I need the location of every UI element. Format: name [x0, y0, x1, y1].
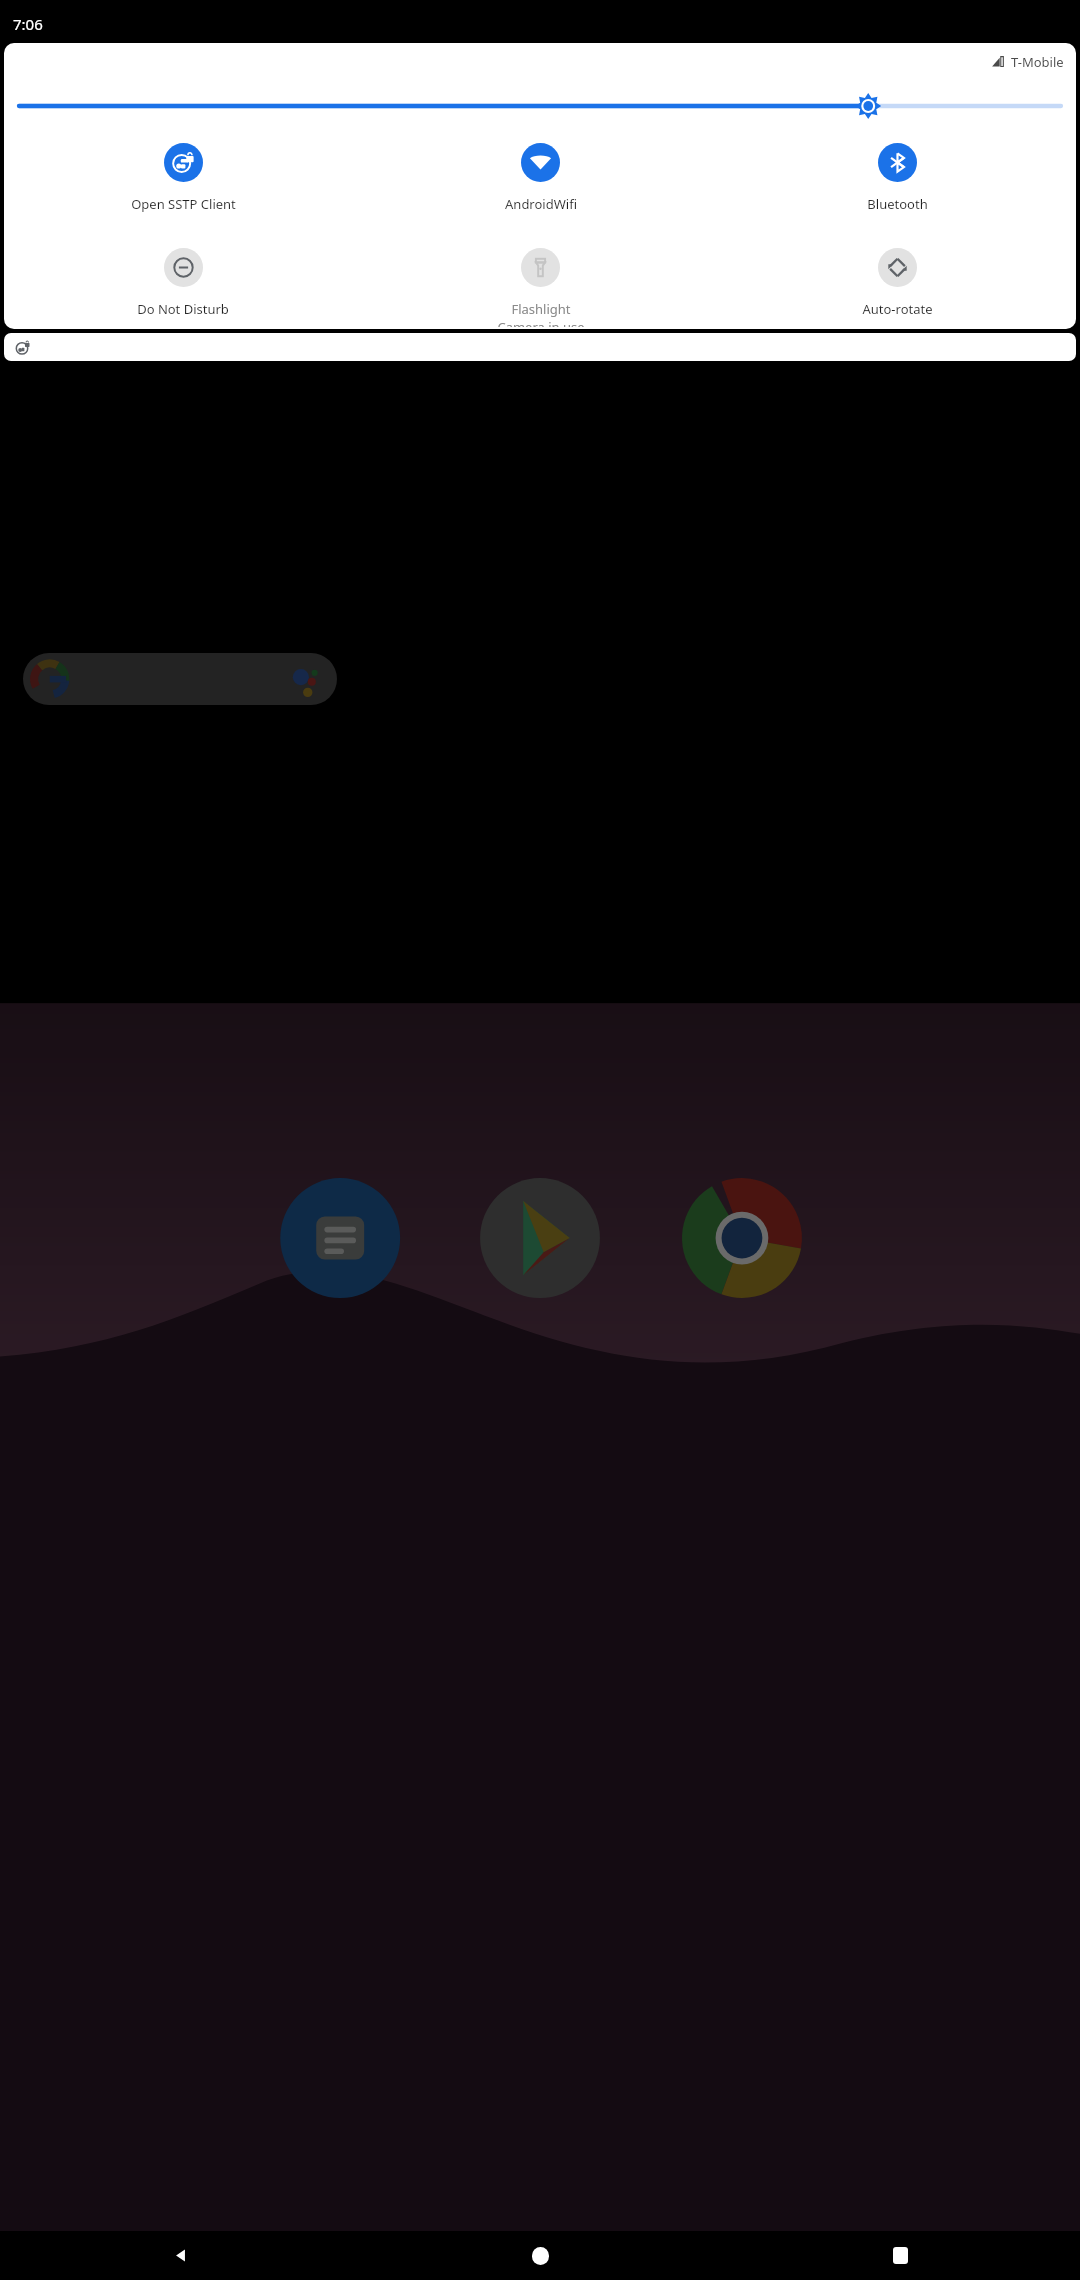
button[interactable]: Auto-rotate [719, 246, 1076, 320]
button[interactable]: AndroidWifi [362, 141, 719, 215]
staticText: Do Not Disturb [137, 300, 229, 318]
button[interactable]: Recent apps [720, 2231, 1080, 2280]
staticText: Open SSTP Client [131, 195, 236, 213]
staticText: Camera in use [497, 318, 585, 327]
button[interactable] [4, 333, 1076, 361]
staticText: Flashlight [511, 300, 571, 318]
staticText: T-Mobile [1011, 53, 1064, 71]
staticText: Auto-rotate [862, 300, 933, 318]
staticText: 7:06 [13, 14, 43, 34]
button[interactable]: Flashlight [362, 246, 719, 329]
button[interactable]: Home [360, 2231, 720, 2280]
staticText: Bluetooth [867, 195, 928, 213]
button[interactable]: Brightness [19, 93, 1061, 119]
button[interactable]: Open SSTP Client [4, 141, 362, 215]
button[interactable]: Do Not Disturb [4, 246, 362, 320]
staticText: AndroidWifi [505, 195, 577, 213]
button[interactable]: Back [0, 2231, 360, 2280]
button[interactable]: Bluetooth [719, 141, 1076, 215]
button[interactable]: Google search [23, 653, 337, 705]
